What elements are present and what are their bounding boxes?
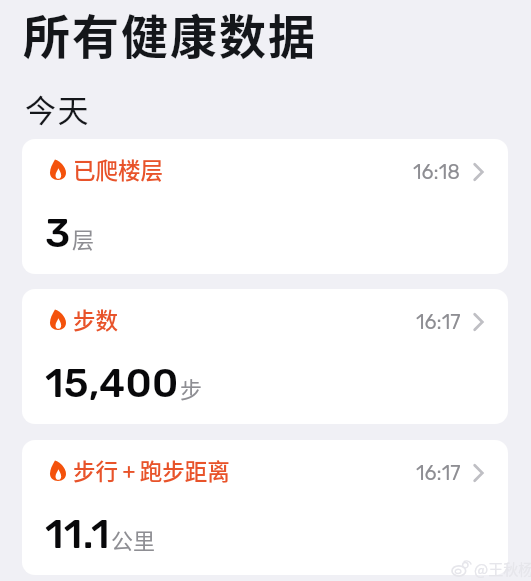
staticText: @王秋杨 [474, 558, 531, 580]
button[interactable]: Activity [22, 289, 508, 424]
other: Open details [473, 313, 484, 331]
button[interactable]: Activity [22, 440, 508, 575]
staticText: 步数 [73, 303, 119, 336]
staticText: 15,400 [45, 360, 179, 407]
staticText: 层 [72, 222, 95, 254]
staticText: 16:18 [413, 160, 461, 184]
staticText: 步 [180, 372, 203, 404]
staticText: 3 [45, 210, 71, 257]
staticText: 今天 [25, 86, 90, 131]
staticText: 11.1 [45, 511, 110, 558]
other: Activity [50, 309, 66, 330]
staticText: 步行 + 跑步距离 [73, 454, 230, 487]
other: Open details [473, 163, 484, 181]
other: Weibo [452, 561, 471, 577]
button[interactable]: Activity [22, 139, 508, 274]
other: Activity [50, 460, 66, 481]
other: Open details [473, 464, 484, 482]
staticText: 公里 [111, 523, 156, 555]
staticText: 16:17 [416, 310, 461, 334]
staticText: 所有健康数据 [23, 0, 317, 67]
other: Activity [50, 159, 66, 180]
staticText: 已爬楼层 [73, 153, 164, 186]
staticText: 16:17 [416, 461, 461, 485]
